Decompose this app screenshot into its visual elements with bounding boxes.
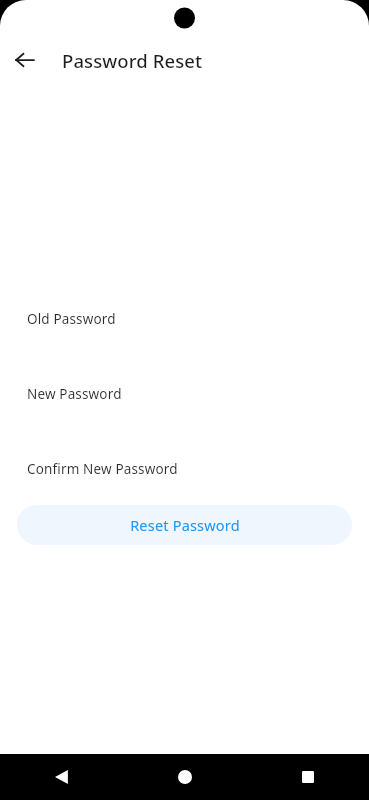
button[interactable]: Reset Password <box>17 505 352 545</box>
button[interactable]: New Password <box>0 380 369 408</box>
staticText: Old Password <box>27 310 116 328</box>
staticText: Confirm New Password <box>27 460 178 478</box>
button[interactable]: Old Password <box>0 305 369 333</box>
staticText: Reset Password <box>130 515 240 535</box>
button[interactable]: Confirm New Password <box>0 455 369 483</box>
staticText: Password Reset <box>62 48 203 73</box>
button[interactable]: Recent apps <box>246 754 369 800</box>
button[interactable]: Back <box>0 754 123 800</box>
button[interactable]: Home <box>123 754 246 800</box>
staticText: New Password <box>27 385 122 403</box>
button[interactable]: Back <box>4 39 46 81</box>
